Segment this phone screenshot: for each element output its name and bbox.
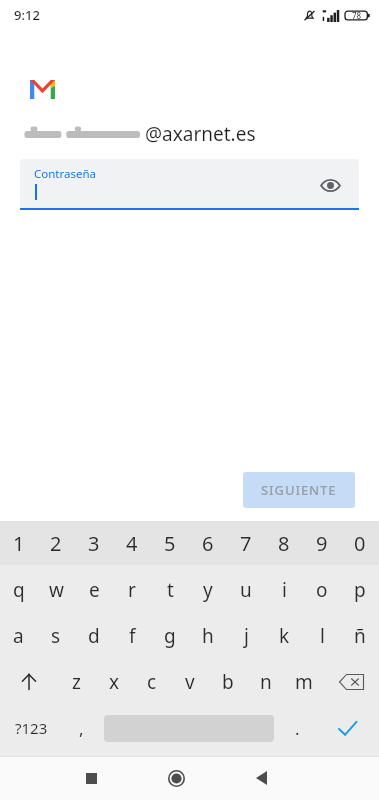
button[interactable]: 8 <box>265 521 303 565</box>
button[interactable]: ñ <box>341 613 379 659</box>
button[interactable]: a <box>0 613 37 659</box>
button[interactable]: r <box>113 567 151 613</box>
button[interactable]: SIGUIENTE <box>243 472 355 508</box>
staticText: r <box>128 577 136 603</box>
staticText: n <box>260 669 272 695</box>
staticText: t <box>167 577 174 603</box>
staticText: l <box>320 623 325 649</box>
button[interactable]: Home <box>156 758 196 798</box>
staticText: 0 <box>354 530 366 557</box>
button[interactable]: d <box>75 613 113 659</box>
button[interactable]: t <box>151 567 189 613</box>
staticText: 8 <box>278 530 290 557</box>
staticText: Contraseña <box>34 166 97 182</box>
button[interactable]: Backspace <box>323 659 379 705</box>
staticText: 2 <box>50 530 62 557</box>
staticText: j <box>244 623 249 649</box>
button[interactable]: v <box>171 659 209 705</box>
staticText: 9 <box>316 530 328 557</box>
staticText: q <box>13 577 25 603</box>
staticText: o <box>316 577 328 603</box>
staticText: , <box>79 717 84 740</box>
staticText: m <box>295 669 313 695</box>
button[interactable]: Recents <box>71 758 111 798</box>
button[interactable]: q <box>0 567 37 613</box>
staticText: d <box>88 623 100 649</box>
button[interactable]: z <box>57 659 95 705</box>
button[interactable]: Show password <box>315 170 345 200</box>
button[interactable]: ?123 <box>0 705 62 751</box>
button[interactable]: 0 <box>341 521 379 565</box>
staticText: 6 <box>202 530 214 557</box>
button[interactable]: 1 <box>0 521 37 565</box>
button[interactable]: Back <box>241 758 281 798</box>
staticText: h <box>202 623 214 649</box>
button[interactable]: Shift <box>0 659 57 705</box>
button[interactable]: Contraseña <box>20 159 359 210</box>
staticText: e <box>89 577 100 603</box>
staticText: y <box>203 577 213 603</box>
button[interactable]: x <box>95 659 133 705</box>
staticText: w <box>49 577 64 603</box>
staticText: @axarnet.es <box>145 121 256 147</box>
button[interactable]: j <box>227 613 265 659</box>
button[interactable]: g <box>151 613 189 659</box>
staticText: b <box>222 669 234 695</box>
button[interactable]: n <box>247 659 285 705</box>
staticText: c <box>147 669 157 695</box>
staticText: . <box>295 717 300 740</box>
staticText: x <box>109 669 120 695</box>
staticText: f <box>129 623 136 649</box>
button[interactable]: 6 <box>189 521 227 565</box>
staticText: SIGUIENTE <box>261 481 337 499</box>
button[interactable]: 3 <box>75 521 113 565</box>
button[interactable]: i <box>265 567 303 613</box>
staticText: v <box>185 669 195 695</box>
staticText: i <box>282 577 287 603</box>
button[interactable]: Done <box>316 705 379 751</box>
button[interactable]: c <box>133 659 171 705</box>
button[interactable]: 2 <box>37 521 75 565</box>
button[interactable]: 9 <box>303 521 341 565</box>
button[interactable]: e <box>75 567 113 613</box>
button[interactable]: 7 <box>227 521 265 565</box>
button[interactable]: 5 <box>151 521 189 565</box>
staticText: k <box>279 623 290 649</box>
staticText: 7 <box>240 530 252 557</box>
button[interactable]: f <box>113 613 151 659</box>
button[interactable]: u <box>227 567 265 613</box>
staticText: 1 <box>13 530 25 557</box>
staticText: 5 <box>164 530 176 557</box>
staticText: ?123 <box>15 718 48 738</box>
staticText: u <box>240 577 252 603</box>
staticText: 4 <box>126 530 138 557</box>
staticText: z <box>72 669 81 695</box>
button[interactable]: l <box>303 613 341 659</box>
button[interactable]: 4 <box>113 521 151 565</box>
button[interactable]: , <box>62 705 100 751</box>
staticText: 78 <box>352 10 362 21</box>
button[interactable]: k <box>265 613 303 659</box>
button[interactable]: p <box>341 567 379 613</box>
button[interactable]: m <box>285 659 323 705</box>
staticText: 3 <box>88 530 100 557</box>
staticText: p <box>354 577 366 603</box>
button[interactable]: b <box>209 659 247 705</box>
staticText: 9:12 <box>14 6 40 24</box>
staticText: ñ <box>354 623 366 649</box>
button[interactable]: h <box>189 613 227 659</box>
button[interactable]: Space <box>100 705 278 751</box>
staticText: a <box>13 623 24 649</box>
button[interactable]: y <box>189 567 227 613</box>
staticText: g <box>164 623 176 649</box>
button[interactable]: . <box>278 705 316 751</box>
button[interactable]: o <box>303 567 341 613</box>
button[interactable]: s <box>37 613 75 659</box>
staticText: s <box>51 623 61 649</box>
button[interactable]: w <box>37 567 75 613</box>
